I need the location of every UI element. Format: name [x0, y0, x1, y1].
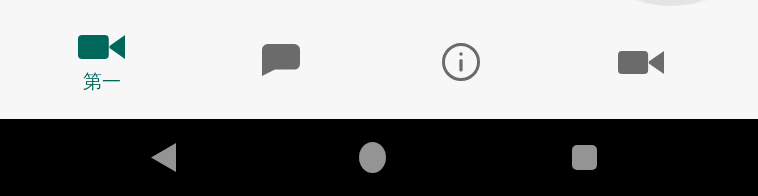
button[interactable]: Chat: [221, 14, 341, 106]
button[interactable]: Back: [100, 119, 227, 196]
button[interactable]: Video call: [581, 16, 701, 108]
button[interactable]: Info: [401, 16, 521, 108]
staticText: 第一: [83, 70, 121, 94]
button[interactable]: Recent apps: [521, 119, 648, 196]
button[interactable]: Home: [309, 119, 436, 196]
button[interactable]: 第一: [26, 14, 176, 106]
